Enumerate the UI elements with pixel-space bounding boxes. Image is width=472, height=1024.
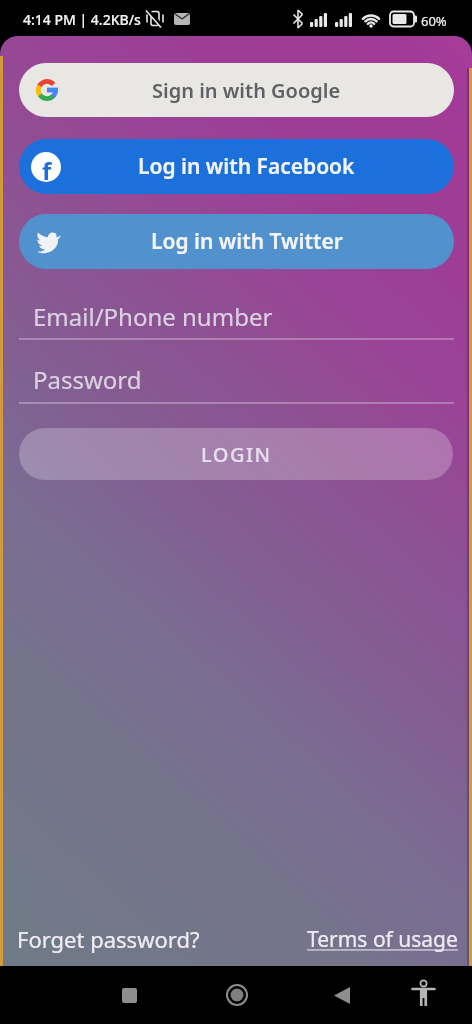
staticText: 60% (421, 12, 447, 30)
button[interactable]: LOGIN (19, 428, 453, 480)
staticText: f (42, 154, 52, 182)
staticText: Password (33, 363, 142, 396)
staticText: Sign in with Google (152, 77, 341, 104)
button[interactable] (326, 979, 358, 1011)
staticText: Email/Phone number (33, 300, 273, 333)
button[interactable] (407, 977, 439, 1009)
button[interactable]: Sign in with Google (19, 63, 454, 117)
staticText: LOGIN (201, 441, 272, 468)
button[interactable]: Log in with Twitter (19, 214, 454, 269)
button[interactable] (113, 979, 145, 1011)
button[interactable]: Password (19, 357, 454, 404)
button[interactable]: Terms of usage (307, 925, 458, 954)
staticText: Log in with Facebook (138, 152, 355, 181)
button[interactable] (221, 979, 253, 1011)
button[interactable]: f (19, 139, 454, 194)
staticText: Log in with Twitter (151, 227, 343, 256)
button[interactable]: Forget password? (17, 924, 200, 954)
button[interactable]: Email/Phone number (19, 294, 454, 340)
staticText: 4:14 PM | 4.2KB/s (23, 10, 141, 29)
